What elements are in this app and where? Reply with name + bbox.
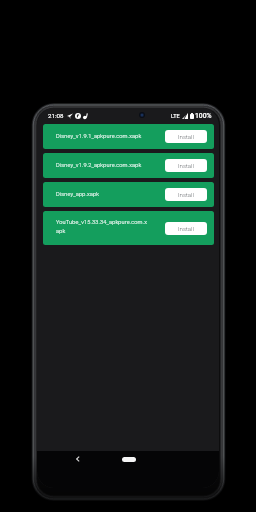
- button[interactable]: Disney_app.xapk: [43, 182, 214, 207]
- staticText: 21:08: [48, 112, 64, 119]
- button[interactable]: Disney_v1.9.2_apkpure.com.xapk: [43, 153, 214, 178]
- staticText: Disney_v1.9.2_apkpure.com.xapk: [56, 162, 149, 169]
- button[interactable]: Back: [73, 454, 83, 464]
- button[interactable]: Install: [165, 188, 207, 201]
- staticText: Install: [178, 191, 194, 198]
- staticText: LTE: [171, 113, 180, 119]
- button[interactable]: YouTube_v15.33.34_apkpure.com.xapk: [43, 211, 214, 245]
- staticText: YouTube_v15.33.34_apkpure.com.xapk: [56, 219, 149, 234]
- staticText: Install: [178, 133, 194, 140]
- button[interactable]: Install: [165, 222, 207, 235]
- staticText: Disney_v1.9.1_apkpure.com.xapk: [56, 133, 149, 140]
- staticText: 100%: [195, 112, 212, 120]
- staticText: Disney_app.xapk: [56, 191, 149, 198]
- button[interactable]: Disney_v1.9.1_apkpure.com.xapk: [43, 124, 214, 149]
- staticText: Install: [178, 162, 194, 169]
- button[interactable]: Install: [165, 159, 207, 172]
- button[interactable]: Install: [165, 130, 207, 143]
- staticText: Install: [178, 225, 194, 232]
- button[interactable]: Home: [122, 457, 136, 462]
